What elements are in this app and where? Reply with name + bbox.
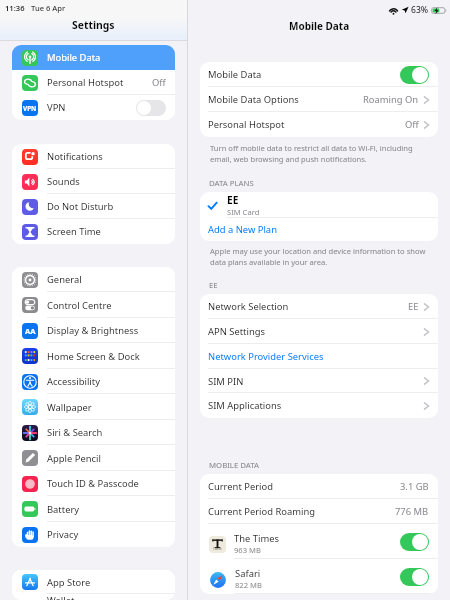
staticText: Safari — [235, 567, 261, 580]
staticText: Wallpaper — [47, 401, 92, 414]
staticText: AA — [25, 326, 36, 336]
staticText: EE — [408, 300, 419, 313]
button[interactable]: Personal Hotspot — [200, 112, 438, 137]
button[interactable]: Screen Time — [12, 219, 175, 244]
staticText: 963 MB — [234, 545, 261, 555]
staticText: Classic — [213, 547, 222, 551]
staticText: EE — [227, 193, 239, 207]
button[interactable]: EE — [200, 192, 438, 218]
button[interactable]: Current Period — [200, 474, 438, 499]
staticText: Mobile Data — [47, 51, 101, 64]
staticText: Apple Pencil — [47, 452, 101, 465]
button[interactable]: Wallpaper — [12, 394, 175, 420]
button[interactable]: Toggle on — [400, 533, 429, 551]
staticText: 63% — [411, 4, 429, 16]
button[interactable]: Network Provider Services — [200, 344, 438, 369]
button[interactable]: Siri & Search — [12, 420, 175, 445]
button[interactable]: Toggle on — [400, 568, 429, 586]
button[interactable]: Mobile Data — [12, 45, 175, 70]
button[interactable]: Notifications — [12, 144, 175, 169]
staticText: Home Screen & Dock — [47, 350, 140, 363]
button[interactable]: VPN — [12, 95, 175, 120]
button[interactable]: App Store — [12, 570, 175, 594]
staticText: General — [47, 273, 82, 286]
staticText: Add a New Plan — [208, 223, 277, 236]
button[interactable]: Personal Hotspot — [12, 70, 175, 95]
staticText: SIM Applications — [208, 399, 282, 412]
button[interactable]: Privacy — [12, 522, 175, 547]
staticText: SIM PIN — [208, 375, 244, 388]
staticText: Control Centre — [47, 299, 112, 312]
button[interactable]: Safari — [200, 559, 438, 594]
staticText: Turn off mobile data to restrict all dat… — [210, 143, 426, 164]
staticText: Notifications — [47, 150, 103, 163]
staticText: Off — [405, 118, 419, 131]
staticText: Touch ID & Passcode — [47, 477, 139, 490]
staticText: SIM Card — [227, 207, 260, 217]
staticText: Tue 6 Apr — [31, 3, 66, 13]
staticText: Wallet — [47, 594, 75, 600]
staticText: DATA PLANS — [209, 178, 254, 189]
staticText: Do Not Disturb — [47, 200, 114, 213]
staticText: Personal Hotspot — [47, 76, 124, 89]
staticText: Current Period — [208, 480, 273, 493]
button[interactable]: Network Selection — [200, 294, 438, 319]
button[interactable]: Accessibility — [12, 369, 175, 394]
staticText: Display & Brightness — [47, 324, 139, 337]
staticText: Accessibility — [47, 375, 100, 388]
staticText: Network Selection — [208, 300, 289, 313]
button[interactable]: APN Settings — [200, 319, 438, 344]
button[interactable]: Apple Pencil — [12, 445, 175, 471]
staticText: Roaming On — [363, 93, 419, 106]
staticText: VPN — [23, 104, 37, 113]
staticText: Privacy — [47, 528, 79, 541]
button[interactable]: Wallet — [12, 594, 175, 600]
staticText: Personal Hotspot — [208, 118, 285, 131]
staticText: MOBILE DATA — [209, 460, 260, 471]
staticText: Network Provider Services — [208, 350, 324, 363]
staticText: Off — [152, 76, 166, 89]
button[interactable]: Sounds — [12, 169, 175, 194]
staticText: Sounds — [47, 175, 80, 188]
button[interactable]: Do Not Disturb — [12, 194, 175, 219]
button[interactable]: Classic — [200, 524, 438, 559]
button[interactable]: Control Centre — [12, 292, 175, 318]
button[interactable]: Mobile Data — [200, 62, 438, 87]
staticText: 822 MB — [235, 580, 262, 590]
button[interactable]: Toggle on — [400, 66, 429, 84]
staticText: Siri & Search — [47, 426, 103, 439]
button[interactable]: AA — [12, 318, 175, 343]
button[interactable]: SIM Applications — [200, 393, 438, 418]
button[interactable]: Add a New Plan — [200, 218, 438, 241]
staticText: Mobile Data Options — [208, 93, 299, 106]
button[interactable]: Toggle off — [136, 100, 166, 116]
staticText: App Store — [47, 576, 91, 589]
staticText: Screen Time — [47, 225, 101, 238]
button[interactable]: Current Period Roaming — [200, 499, 438, 524]
staticText: Mobile Data — [289, 19, 350, 33]
staticText: 3.1 GB — [400, 480, 429, 493]
button[interactable]: SIM PIN — [200, 369, 438, 393]
staticText: 776 MB — [395, 505, 429, 518]
staticText: Battery — [47, 503, 80, 516]
staticText: Mobile Data — [208, 68, 262, 81]
button[interactable]: General — [12, 267, 175, 292]
staticText: Current Period Roaming — [208, 505, 315, 518]
button[interactable]: Mobile Data Options — [200, 87, 438, 112]
staticText: The Times — [234, 532, 279, 545]
staticText: EE — [209, 280, 218, 291]
button[interactable]: Home Screen & Dock — [12, 343, 175, 369]
staticText: Apple may use your location and device i… — [210, 246, 426, 267]
button[interactable]: Touch ID & Passcode — [12, 471, 175, 496]
staticText: 11:36 — [5, 3, 25, 13]
button[interactable]: Battery — [12, 496, 175, 522]
staticText: APN Settings — [208, 325, 265, 338]
staticText: VPN — [47, 101, 66, 114]
staticText: Settings — [72, 18, 115, 32]
